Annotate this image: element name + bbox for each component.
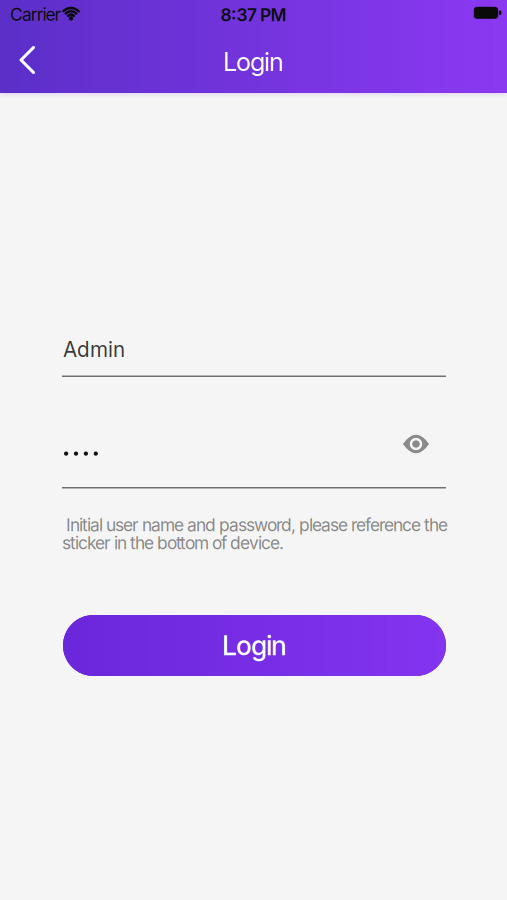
button[interactable]: Show password [396,424,436,464]
staticText: Carrier [10,4,61,25]
staticText: Admin [63,337,125,362]
button[interactable]: Back [2,36,46,84]
staticText: Login [223,46,284,77]
button[interactable]: Login [63,615,446,676]
button[interactable] [62,432,507,900]
staticText: sticker in the bottom of device. [62,532,284,553]
staticText: Login [222,629,287,662]
staticText: Initial user name and password, please r… [62,514,448,535]
button[interactable]: Admin [62,337,446,383]
staticText: 8:37 PM [220,4,286,25]
